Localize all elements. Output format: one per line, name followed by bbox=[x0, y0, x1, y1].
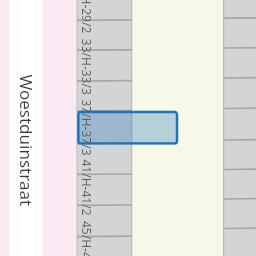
button[interactable]: Cadastral map bbox=[0, 0, 256, 256]
